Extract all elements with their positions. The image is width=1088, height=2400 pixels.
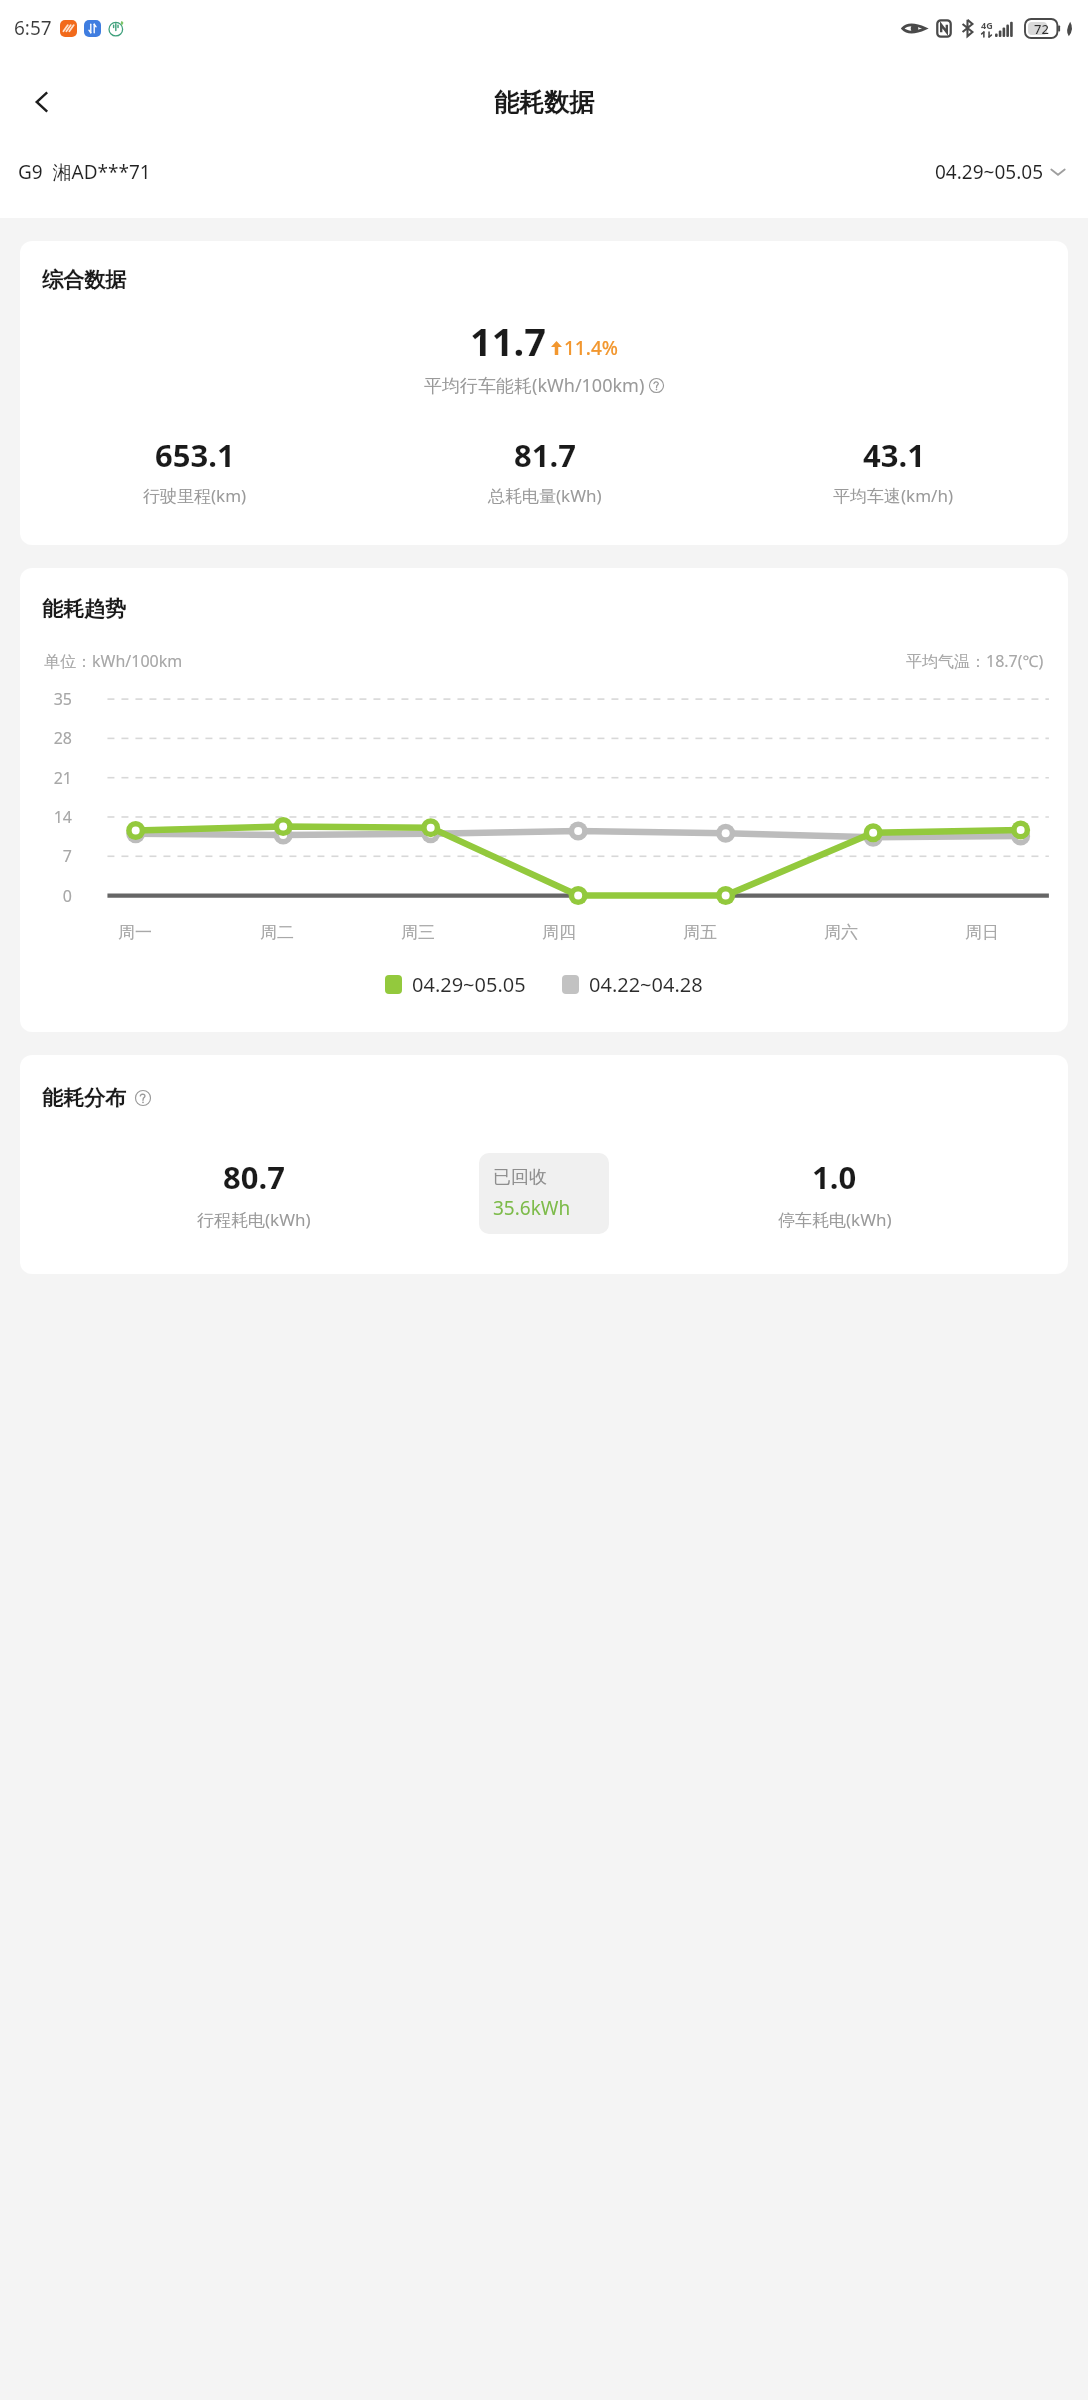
staticText: 21: [34, 767, 72, 789]
staticText: 35.6kWh: [493, 1195, 571, 1221]
staticText: 11.7: [470, 315, 546, 367]
staticText: 停车耗电(kWh): [778, 1208, 892, 1231]
staticText: 7: [34, 845, 72, 867]
staticText: 周日: [965, 922, 999, 943]
staticText: 能耗分布: [42, 1085, 126, 1111]
staticText: 6:57: [14, 15, 52, 41]
staticText: 行驶里程(km): [143, 484, 247, 507]
staticText: 653.1: [155, 434, 235, 476]
staticText: 平均气温：18.7(℃): [906, 650, 1044, 672]
staticText: 行程耗电(kWh): [197, 1208, 311, 1231]
staticText: 04.29~05.05: [935, 159, 1043, 185]
staticText: 能耗趋势: [42, 596, 126, 622]
staticText: 28: [34, 727, 72, 749]
staticText: 1.0: [812, 1156, 857, 1198]
staticText: 周四: [542, 922, 576, 943]
staticText: 周二: [260, 922, 294, 943]
staticText: 81.7: [514, 434, 576, 476]
staticText: 43.1: [863, 434, 925, 476]
staticText: G9 湘AD***71: [18, 159, 151, 185]
staticText: 14: [34, 806, 72, 828]
button[interactable]: 04.29~05.05: [931, 155, 1070, 189]
staticText: 能耗数据: [494, 87, 594, 118]
staticText: 04.22~04.28: [589, 971, 703, 998]
staticText: 周六: [824, 922, 858, 943]
staticText: 0: [34, 885, 72, 907]
button[interactable]: Back: [14, 74, 70, 130]
staticText: 平均行车能耗(kWh/100km): [424, 373, 645, 398]
staticText: 已回收: [493, 1166, 547, 1189]
staticText: 总耗电量(kWh): [488, 484, 602, 507]
staticText: 单位：kWh/100km: [44, 650, 183, 672]
staticText: 72: [1034, 20, 1049, 38]
staticText: 35: [34, 688, 72, 710]
staticText: 04.29~05.05: [412, 971, 526, 998]
staticText: 综合数据: [42, 267, 126, 293]
staticText: 平均车速(km/h): [833, 484, 954, 507]
staticText: 4G: [981, 19, 993, 31]
staticText: 周一: [118, 922, 152, 943]
staticText: 周三: [401, 922, 435, 943]
staticText: 80.7: [223, 1156, 285, 1198]
staticText: 周五: [683, 922, 717, 943]
staticText: 11.4%: [564, 335, 618, 361]
